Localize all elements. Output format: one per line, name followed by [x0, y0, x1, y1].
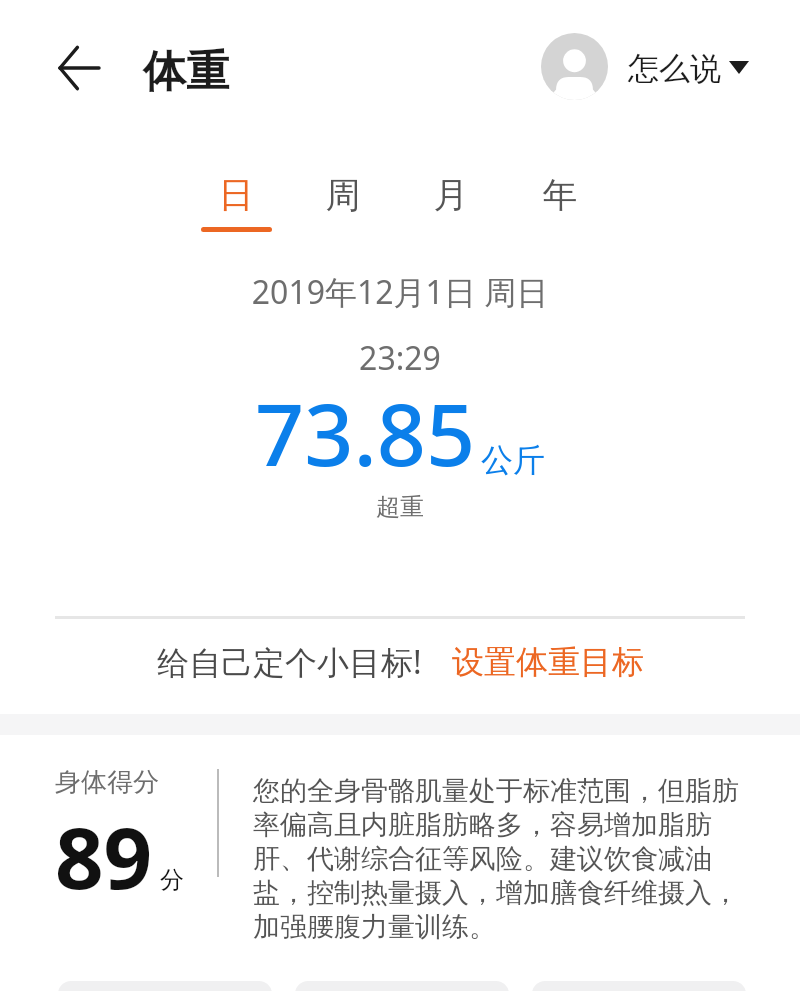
staticText: 设置体重目标	[452, 642, 644, 682]
staticText: 怎么说	[628, 49, 721, 88]
staticText: 分	[160, 865, 184, 895]
staticText: 给自己定个小目标!	[157, 640, 422, 684]
staticText: 月	[406, 173, 496, 217]
staticText: 2019年12月1日 周日	[0, 270, 800, 314]
staticText: 73.85	[255, 374, 476, 491]
staticText: 身体得分	[55, 766, 159, 799]
staticText: 日	[191, 173, 281, 217]
button[interactable]: 日	[191, 166, 281, 236]
button[interactable]: 月	[406, 166, 496, 236]
button[interactable]: Back	[47, 36, 111, 100]
staticText: 超重	[0, 492, 800, 522]
staticText: 23:29	[0, 336, 800, 380]
button[interactable]: 周	[298, 166, 388, 236]
staticText: 您的全身骨骼肌量处于标准范围，但脂肪率偏高且内脏脂肪略多，容易增加脂肪肝、代谢综…	[253, 774, 753, 944]
button[interactable]: 给自己定个小目标!	[0, 618, 800, 706]
staticText: 公斤	[481, 440, 545, 480]
staticText: 年	[515, 173, 605, 217]
button[interactable]: 怎么说	[541, 33, 749, 100]
button[interactable]: 年	[515, 166, 605, 236]
staticText: 89	[55, 798, 153, 914]
staticText: 周	[298, 173, 388, 217]
staticText: 体重	[143, 45, 229, 99]
